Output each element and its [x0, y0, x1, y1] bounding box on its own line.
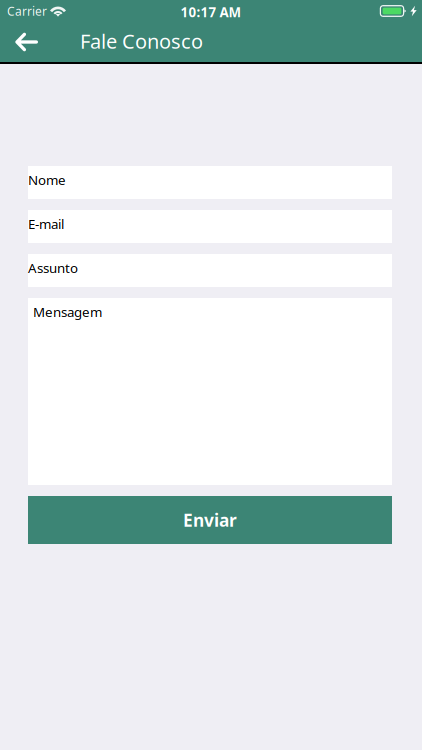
button[interactable]: Back	[0, 22, 80, 62]
staticText: E-mail	[28, 215, 64, 233]
staticText: Fale Conosco	[80, 28, 203, 54]
staticText: Carrier	[7, 3, 47, 19]
button[interactable]: Enviar	[28, 496, 392, 544]
staticText: Mensagem	[33, 303, 102, 321]
button[interactable]: E-mail	[28, 210, 392, 243]
button[interactable]: Nome	[28, 166, 392, 199]
staticText: 10:17 AM	[180, 3, 241, 21]
button[interactable]: Mensagem	[28, 298, 392, 485]
staticText: Assunto	[28, 259, 78, 277]
button[interactable]: Assunto	[28, 254, 392, 287]
staticText: Nome	[28, 171, 66, 189]
staticText: Enviar	[183, 508, 237, 531]
